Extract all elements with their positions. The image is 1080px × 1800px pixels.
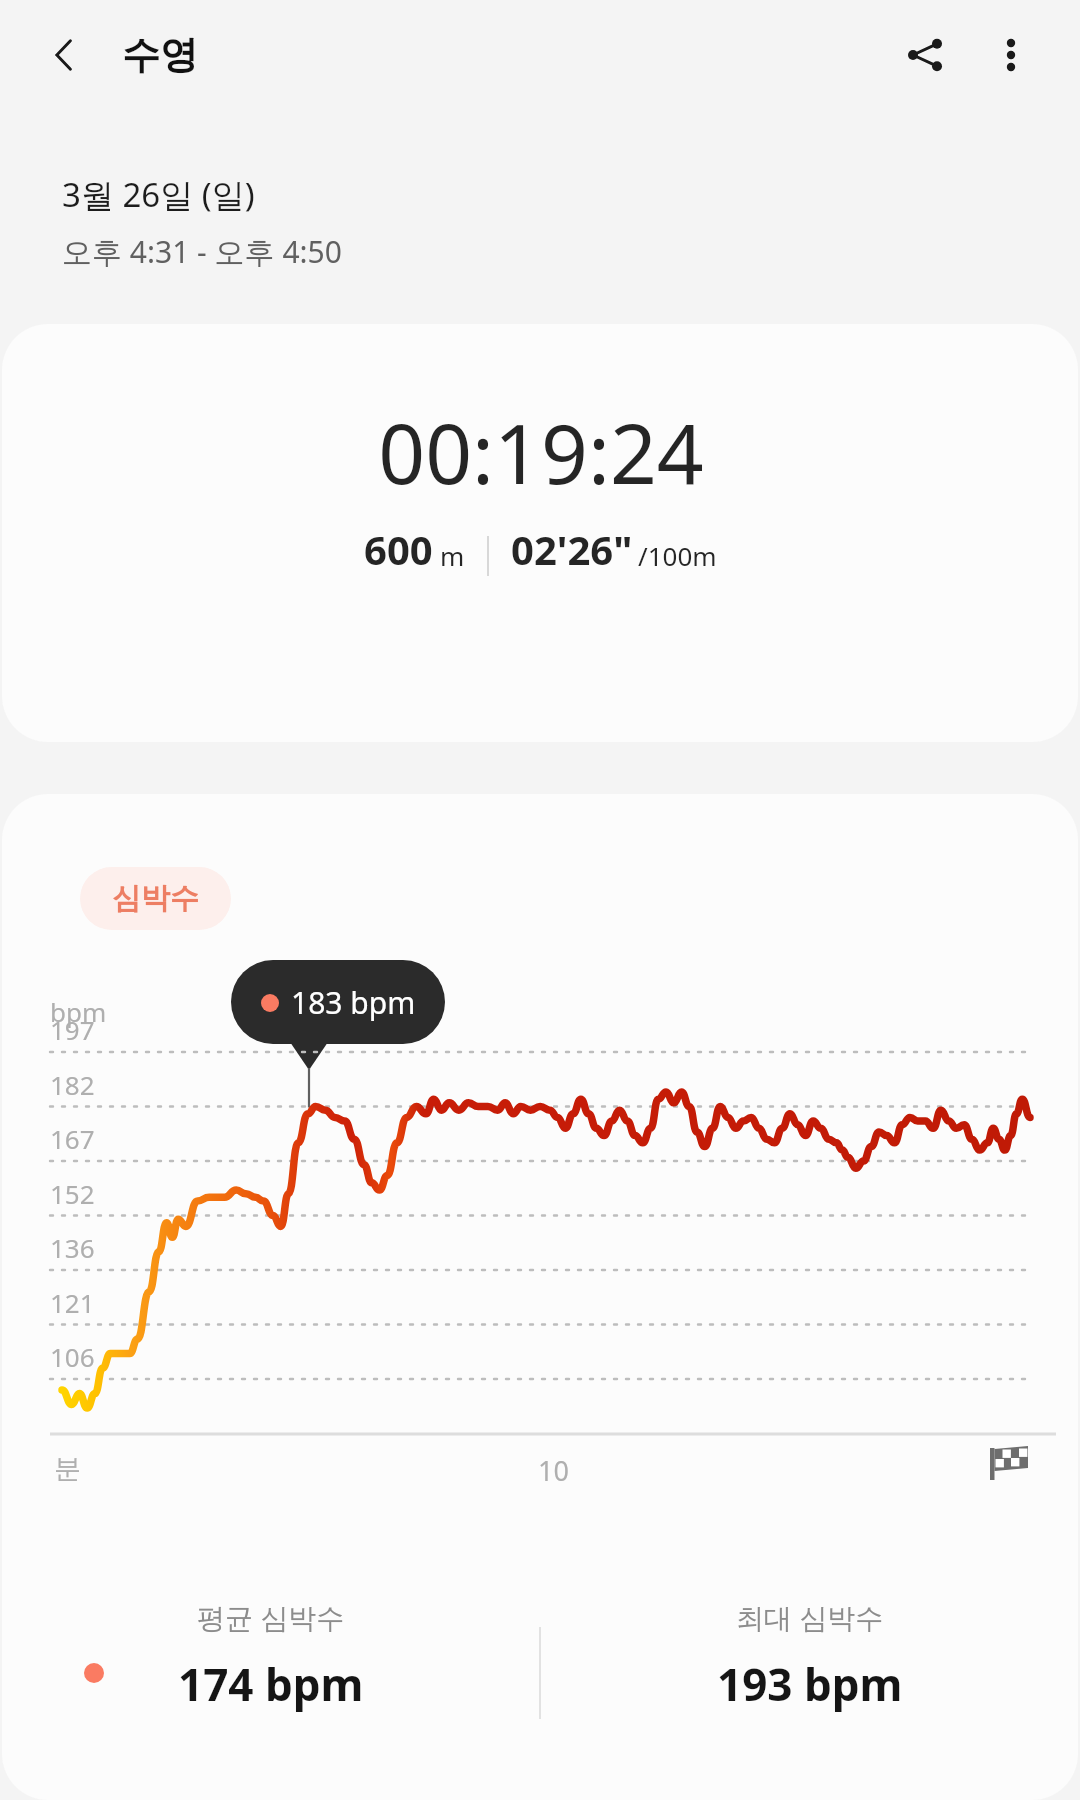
staticText: 152 — [50, 1176, 95, 1211]
staticText: 심박수 — [112, 880, 199, 917]
staticText: 106 — [50, 1339, 95, 1374]
staticText: 3월 26일 (일) — [62, 172, 255, 217]
staticText: 183 bpm — [291, 982, 416, 1023]
staticText: 174 bpm — [178, 1654, 364, 1714]
button[interactable]: More options — [968, 12, 1054, 98]
staticText: 수영 — [122, 31, 198, 79]
button[interactable]: 183 bpm — [231, 960, 445, 1044]
staticText: 167 — [50, 1121, 95, 1156]
staticText: 193 bpm — [717, 1654, 903, 1714]
button[interactable]: 00:19:24 — [2, 324, 1078, 742]
staticText: /100m — [638, 538, 717, 573]
staticText: 121 — [50, 1285, 95, 1320]
staticText: 10 — [538, 1452, 569, 1489]
staticText: bpm — [50, 994, 107, 1029]
button[interactable]: Back — [30, 20, 100, 90]
staticText: 182 — [50, 1067, 95, 1102]
staticText: 분 — [54, 1452, 81, 1486]
button[interactable]: Share — [882, 12, 968, 98]
staticText: 136 — [50, 1230, 95, 1265]
staticText: 00:19:24 — [378, 396, 704, 508]
staticText: 평균 심박수 — [197, 1598, 345, 1636]
staticText: 600 — [364, 522, 433, 576]
button[interactable]: 심박수 — [80, 867, 231, 930]
staticText: 오후 4:31 - 오후 4:50 — [62, 231, 342, 272]
staticText: 최대 심박수 — [736, 1598, 884, 1636]
staticText: 197 — [50, 1012, 95, 1047]
staticText: 02'26" — [511, 522, 633, 576]
staticText: m — [440, 538, 465, 573]
